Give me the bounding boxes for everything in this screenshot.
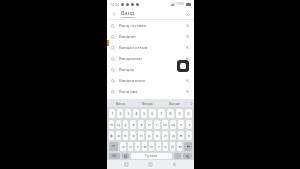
staticText: щ <box>171 122 175 127</box>
button[interactable]: м <box>142 142 147 151</box>
staticText: Ванд <box>116 101 125 106</box>
staticText: р <box>148 133 151 138</box>
button[interactable]: д <box>170 131 176 140</box>
button[interactable]: б <box>170 142 175 151</box>
staticText: в <box>124 133 127 138</box>
staticText: 7 <box>160 111 163 116</box>
button[interactable]: 7 <box>158 109 165 118</box>
staticText: с <box>137 144 139 149</box>
button[interactable]: ч <box>128 142 133 151</box>
button[interactable]: 2 <box>117 109 123 118</box>
button[interactable]: и <box>149 142 154 151</box>
button[interactable]: !#1 <box>109 153 120 159</box>
button[interactable]: п <box>138 131 144 140</box>
button[interactable]: Вандализм <box>107 53 194 64</box>
button[interactable]: 0 <box>185 109 192 118</box>
button[interactable]: Home <box>146 160 155 169</box>
staticText: ш <box>163 122 167 127</box>
button[interactable]: р <box>146 131 152 140</box>
staticText: Ванд <box>121 9 135 16</box>
button[interactable]: н <box>146 120 152 129</box>
button[interactable]: 5 <box>141 109 147 118</box>
button[interactable]: ц <box>116 120 121 129</box>
button[interactable]: с <box>135 142 140 151</box>
button[interactable]: 1 <box>109 109 115 118</box>
button[interactable]: 6 <box>149 109 156 118</box>
button[interactable]: я <box>120 142 126 151</box>
button[interactable]: т <box>156 142 161 151</box>
button[interactable]: Backspace <box>184 142 192 151</box>
button[interactable]: ж <box>178 131 184 140</box>
button[interactable]: Ванд готовая <box>107 20 194 31</box>
button[interactable]: 3 <box>125 109 131 118</box>
button[interactable]: Вандер кино <box>107 75 194 86</box>
button[interactable]: Ванд <box>107 99 134 107</box>
button[interactable]: о <box>154 131 160 140</box>
button[interactable]: 4 <box>133 109 139 118</box>
button[interactable]: Ванд <box>121 9 183 18</box>
staticText: ч <box>129 144 132 149</box>
staticText: л <box>164 133 167 138</box>
staticText: 4 <box>135 111 138 116</box>
button[interactable]: Ванда <box>134 99 161 107</box>
button[interactable]: г <box>154 120 160 129</box>
button[interactable]: Вандал отзыв <box>107 42 194 53</box>
other: Insert <box>186 57 190 61</box>
staticText: е <box>140 122 143 127</box>
staticText: Вандер кино <box>119 78 145 84</box>
staticText: п <box>140 133 143 138</box>
staticText: 1 <box>111 111 114 116</box>
button[interactable]: Ванд ива <box>107 86 194 97</box>
button[interactable]: Ванде <box>161 99 188 107</box>
button[interactable]: ю <box>177 142 182 151</box>
staticText: к <box>132 122 135 127</box>
button[interactable]: ш <box>162 120 168 129</box>
staticText: ж <box>179 133 183 138</box>
button[interactable]: у <box>123 120 128 129</box>
button[interactable]: х <box>186 120 192 129</box>
staticText: Вандал отзыв <box>119 45 148 51</box>
staticText: Ванднет <box>119 34 136 40</box>
staticText: !#1 <box>112 154 117 158</box>
button[interactable]: э <box>186 131 192 140</box>
staticText: м <box>143 144 147 149</box>
staticText: Вандер <box>119 67 135 73</box>
button[interactable]: . <box>174 153 181 159</box>
button[interactable]: 8 <box>167 109 174 118</box>
staticText: Русский <box>145 154 158 158</box>
button[interactable]: Back <box>170 160 179 169</box>
button[interactable]: Search <box>183 153 192 159</box>
button[interactable]: Вандер <box>107 64 194 75</box>
staticText: я <box>122 144 125 149</box>
staticText: г <box>156 122 158 127</box>
button[interactable]: е <box>138 120 144 129</box>
other: Insert <box>186 46 190 50</box>
button[interactable]: й <box>109 120 114 129</box>
staticText: Ванде <box>169 101 180 106</box>
staticText: и <box>150 144 153 149</box>
button[interactable]: ф <box>109 131 114 140</box>
button[interactable]: Shift <box>109 142 118 151</box>
button[interactable]: щ <box>170 120 176 129</box>
button[interactable]: Back <box>110 10 118 18</box>
staticText: Ванд ива <box>119 89 138 95</box>
button[interactable]: Clear <box>183 10 191 18</box>
button[interactable]: а <box>130 131 136 140</box>
staticText: э <box>188 133 190 138</box>
staticText: 100% <box>176 2 185 6</box>
button[interactable]: л <box>162 131 168 140</box>
button[interactable]: ь <box>163 142 168 151</box>
button[interactable]: More suggestions <box>188 99 194 107</box>
button[interactable]: з <box>178 120 184 129</box>
button[interactable]: Space <box>131 153 172 159</box>
button[interactable]: 9 <box>176 109 183 118</box>
button[interactable]: Emoji <box>122 153 129 159</box>
button[interactable]: в <box>123 131 128 140</box>
other: Insert <box>186 24 190 28</box>
button[interactable]: Recents <box>122 160 131 169</box>
staticText: й <box>110 122 113 127</box>
staticText: б <box>171 144 174 149</box>
button[interactable]: к <box>130 120 136 129</box>
button[interactable]: Ванднет <box>107 31 194 42</box>
button[interactable]: ы <box>116 131 121 140</box>
